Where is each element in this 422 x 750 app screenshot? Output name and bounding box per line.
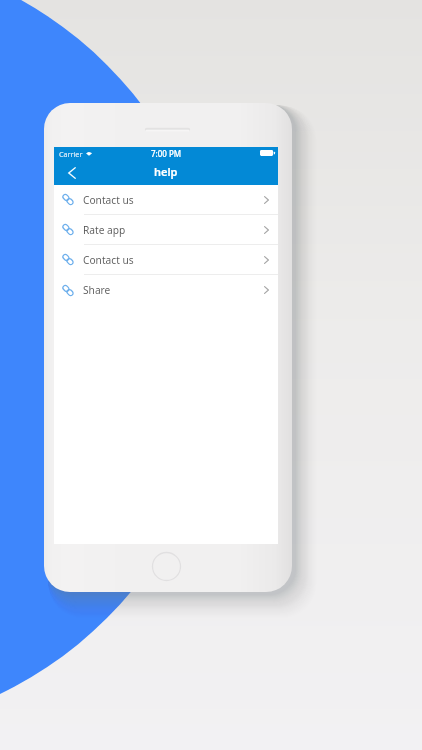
button[interactable]: Share (54, 275, 278, 305)
button[interactable]: Rate app (54, 215, 278, 245)
staticText: Share (83, 283, 111, 297)
staticText: 7:00 PM (151, 148, 182, 159)
staticText: Contact us (83, 253, 134, 267)
staticText: help (154, 164, 178, 179)
staticText: Rate app (83, 223, 126, 237)
staticText: Contact us (83, 193, 134, 207)
button[interactable]: Contact us (54, 245, 278, 275)
staticText: Carrier (59, 149, 83, 159)
button[interactable]: Back (62, 162, 82, 184)
button[interactable]: Contact us (54, 185, 278, 215)
